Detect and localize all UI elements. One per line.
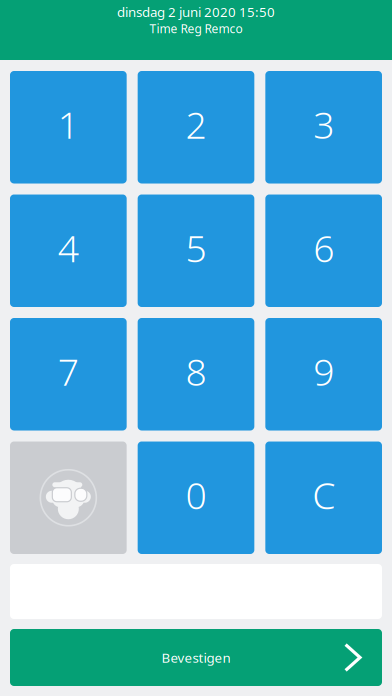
button[interactable]: 5 bbox=[138, 194, 254, 307]
button[interactable]: 2 bbox=[138, 71, 254, 183]
staticText: C bbox=[312, 470, 335, 520]
staticText: 2 bbox=[185, 99, 206, 149]
button[interactable]: 7 bbox=[10, 318, 127, 430]
staticText: Time Reg Remco bbox=[149, 21, 242, 37]
button[interactable]: 6 bbox=[265, 194, 382, 307]
button[interactable]: 1 bbox=[10, 71, 127, 183]
staticText: 7 bbox=[58, 346, 79, 396]
button[interactable]: Profile bbox=[10, 441, 127, 554]
button[interactable]: Bevestigen bbox=[10, 629, 382, 686]
staticText: dinsdag 2 juni 2020 15:50 bbox=[117, 3, 275, 21]
staticText: 1 bbox=[58, 99, 79, 149]
staticText: 9 bbox=[313, 346, 334, 396]
button[interactable]: 4 bbox=[10, 194, 127, 307]
staticText: 8 bbox=[185, 346, 206, 396]
staticText: 5 bbox=[185, 223, 206, 273]
staticText: 3 bbox=[313, 99, 334, 149]
button[interactable]: C bbox=[265, 441, 382, 554]
button[interactable]: 9 bbox=[265, 318, 382, 430]
staticText: 6 bbox=[313, 223, 334, 273]
staticText: 4 bbox=[58, 223, 79, 273]
staticText: Bevestigen bbox=[161, 649, 230, 666]
button[interactable]: 0 bbox=[138, 441, 254, 554]
button[interactable]: 8 bbox=[138, 318, 254, 430]
button[interactable]: 3 bbox=[265, 71, 382, 183]
staticText: 0 bbox=[185, 470, 206, 520]
